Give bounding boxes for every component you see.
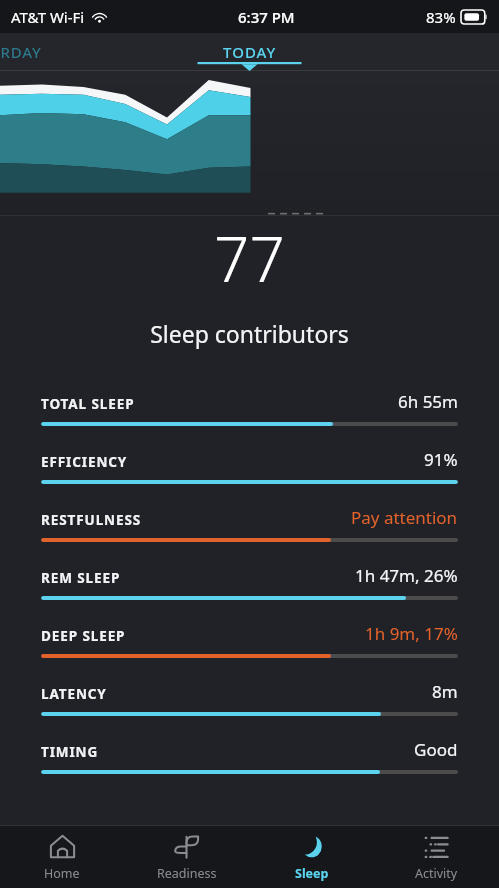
staticText: 77	[214, 216, 285, 292]
staticText: AT&T Wi-Fi	[11, 7, 85, 27]
staticText: STERDAY	[0, 42, 42, 62]
button[interactable]: TODAY	[201, 38, 299, 66]
staticText: RESTFULNESS	[41, 511, 142, 529]
staticText: Good	[414, 738, 458, 761]
button[interactable]: EFFICIENCY	[0, 448, 499, 484]
staticText: Readiness	[157, 865, 217, 882]
staticText: TOTAL SLEEP	[41, 395, 135, 413]
button[interactable]: LATENCY	[0, 680, 499, 716]
staticText: Home	[44, 865, 80, 882]
button[interactable]: TIMING	[0, 738, 499, 774]
button[interactable]: Readiness	[124, 826, 249, 888]
staticText: Sleep	[295, 865, 329, 882]
staticText: DEEP SLEEP	[41, 627, 126, 645]
staticText: 91%	[424, 448, 458, 471]
staticText: 8m	[432, 680, 458, 703]
staticText: Activity	[415, 865, 458, 882]
staticText: LATENCY	[41, 685, 107, 703]
staticText: 1h 47m, 26%	[355, 564, 458, 587]
staticText: 1h 9m, 17%	[365, 622, 458, 645]
button[interactable]: Activity	[374, 826, 499, 888]
button[interactable]: RESTFULNESS	[0, 506, 499, 542]
staticText: 6:37 PM	[238, 7, 295, 27]
staticText: TODAY	[223, 42, 277, 62]
staticText: EFFICIENCY	[41, 453, 128, 471]
staticText: 83%	[426, 7, 456, 27]
button[interactable]: TOTAL SLEEP	[0, 390, 499, 426]
button[interactable]: REM SLEEP	[0, 564, 499, 600]
button[interactable]: YE	[0, 36, 50, 68]
staticText: Sleep contributors	[0, 318, 499, 349]
staticText: Pay attention	[351, 506, 458, 529]
staticText: TIMING	[41, 743, 99, 761]
button[interactable]: Sleep	[249, 826, 374, 888]
button[interactable]: DEEP SLEEP	[0, 622, 499, 658]
staticText: REM SLEEP	[41, 569, 121, 587]
button[interactable]: Home	[0, 826, 124, 888]
staticText: 6h 55m	[398, 390, 458, 413]
